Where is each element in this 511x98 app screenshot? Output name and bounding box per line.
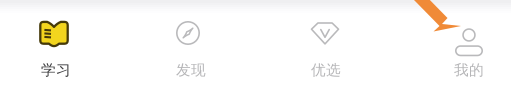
staticText: 学习 (41, 61, 71, 79)
button[interactable]: 优选 (263, 0, 387, 98)
button[interactable]: 学习 (0, 0, 116, 98)
button[interactable]: 我的 (407, 0, 511, 98)
staticText: 优选 (311, 61, 341, 79)
staticText: 我的 (454, 61, 484, 79)
button[interactable]: 发现 (126, 0, 250, 98)
staticText: 发现 (176, 61, 206, 79)
